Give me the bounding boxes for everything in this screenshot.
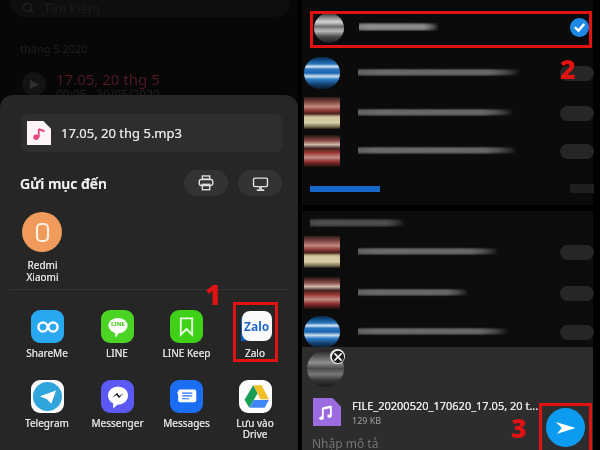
button[interactable]: Send — [302, 234, 593, 272]
button[interactable]: Telegram — [12, 380, 82, 430]
staticText: Zalo — [244, 318, 270, 334]
button[interactable]: Send — [302, 133, 593, 171]
staticText: Lưu vào Drive — [236, 416, 274, 441]
staticText: Redmi Xiaomi — [26, 258, 59, 284]
button[interactable]: 17.05, 20 thg 5.mp3 — [21, 114, 282, 152]
button[interactable]: Cast to screen — [238, 170, 282, 196]
button[interactable]: Messages — [151, 380, 221, 430]
staticText: 17.05, 20 thg 5 — [56, 69, 160, 89]
button[interactable]: Remove attachment — [330, 349, 345, 364]
button[interactable]: Send — [560, 325, 594, 340]
button[interactable]: Messenger — [82, 380, 152, 430]
button[interactable]: Lưu vào Drive — [220, 380, 290, 441]
staticText: 1 — [205, 275, 222, 313]
button[interactable]: Send — [302, 275, 593, 313]
staticText: Messenger — [91, 416, 144, 430]
button[interactable]: Selected — [302, 10, 593, 48]
button[interactable]: Send — [560, 66, 594, 81]
staticText: Tìm kiếm — [44, 0, 100, 17]
staticText: ShareMe — [26, 346, 68, 360]
button[interactable]: Redmi Xiaomi — [12, 212, 72, 284]
staticText: LINE Keep — [162, 346, 211, 360]
staticText: Messages — [163, 416, 210, 430]
button[interactable]: Send — [302, 55, 593, 93]
staticText: LINE — [106, 346, 128, 360]
staticText: Zalo — [245, 346, 265, 360]
staticText: LINE — [111, 320, 125, 328]
button[interactable]: LINE — [82, 310, 152, 360]
button[interactable]: LINE Keep — [151, 310, 221, 360]
staticText: Gửi mục đến — [20, 174, 107, 193]
staticText: FILE_20200520_170620_17.05, 20 t... — [352, 398, 539, 413]
staticText: 2 — [560, 50, 576, 87]
button[interactable]: Send — [560, 144, 594, 159]
button[interactable]: Send — [302, 95, 593, 133]
staticText: Telegram — [25, 416, 69, 430]
button[interactable]: Send — [302, 314, 593, 352]
other: Selected — [570, 18, 589, 37]
button[interactable]: Zalo — [220, 310, 290, 360]
staticText: Nhập mô tả — [312, 435, 379, 450]
staticText: 129 KB — [352, 414, 382, 426]
staticText: 00:05 20/05/2020 — [56, 86, 160, 102]
button[interactable]: Send — [546, 408, 585, 447]
staticText: tháng 5 2020 — [20, 41, 88, 56]
button[interactable]: Print — [184, 170, 228, 196]
button[interactable]: Send — [560, 245, 594, 260]
button[interactable]: Send — [560, 286, 594, 301]
staticText: 3 — [511, 409, 527, 446]
button[interactable]: Send — [560, 106, 594, 121]
button[interactable]: ShareMe — [12, 310, 82, 360]
staticText: 17.05, 20 thg 5.mp3 — [61, 124, 182, 142]
